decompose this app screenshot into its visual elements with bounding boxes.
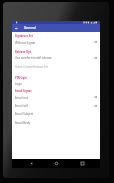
button[interactable]: Recent apps (75, 159, 89, 168)
button[interactable]: PIN Opts (12, 71, 100, 80)
staticText: General (24, 26, 36, 30)
button[interactable]: Navigate up (12, 24, 20, 32)
staticText: Email self (15, 104, 28, 108)
button[interactable]: Email Body (12, 118, 100, 127)
button[interactable]: Home (49, 159, 63, 168)
staticText: Use comfort model release (15, 56, 52, 60)
staticText: Release Opt (15, 50, 32, 54)
staticText: Email Subject (15, 112, 34, 116)
staticText: Email Body (15, 121, 31, 125)
button[interactable]: Email Signat (12, 86, 100, 94)
button[interactable]: Email md (12, 94, 100, 102)
button[interactable]: Use comfort model release (12, 54, 100, 62)
staticText: Email Signat (15, 89, 32, 93)
staticText: PIN Opts (15, 76, 27, 80)
button[interactable]: Signature Set (12, 32, 100, 39)
staticText: Email md (15, 96, 28, 100)
button[interactable]: Select Custom Release File (12, 62, 100, 71)
staticText: Select Custom Release File (15, 65, 49, 69)
button[interactable]: Logo (12, 80, 100, 87)
button[interactable]: Back (24, 159, 38, 168)
staticText: Without Signat (15, 41, 36, 45)
button[interactable]: Without Signat (12, 39, 100, 47)
button[interactable]: Email self (12, 102, 100, 111)
button[interactable]: Release Opt (12, 47, 100, 55)
staticText: Signature Set (15, 34, 33, 38)
staticText: Logo (15, 82, 22, 86)
button[interactable]: Email Subject (12, 110, 100, 118)
